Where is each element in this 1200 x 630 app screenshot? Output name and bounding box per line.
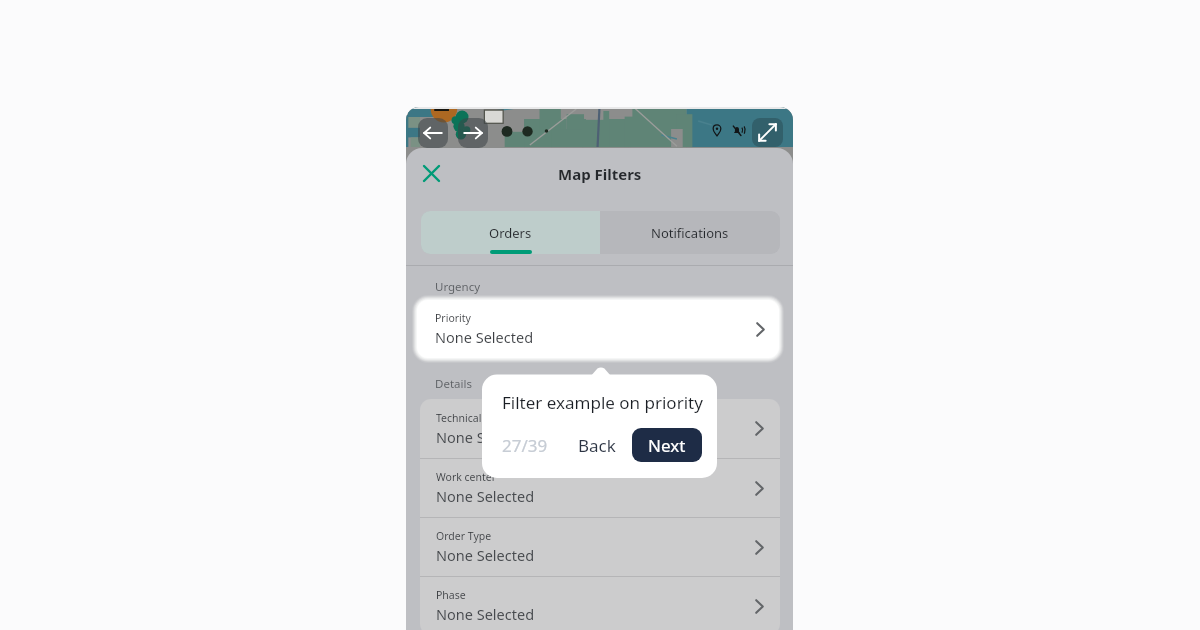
staticText: None Selected [435,327,534,347]
staticText: Next [648,434,686,457]
staticText: Back [578,434,616,457]
button[interactable]: Expand [752,118,783,147]
button[interactable]: Back [418,118,448,148]
staticText: Priority [435,311,471,325]
staticText: Map Filters [558,164,642,184]
staticText: Orders [489,224,532,242]
staticText: None Selected [436,604,535,624]
button[interactable]: Priority [417,300,779,358]
button[interactable]: Location [708,121,726,139]
staticText: 27/39 [502,434,548,457]
button[interactable]: Technical Object [420,399,780,458]
staticText: Order Type [436,529,492,543]
button[interactable]: Next [632,428,702,462]
staticText: Work center [436,470,497,484]
button[interactable]: Close [417,159,445,187]
staticText: Details [435,376,472,392]
button[interactable]: Notifications [600,211,780,254]
button[interactable]: Order Type [420,518,780,576]
button[interactable]: Mute alerts [730,121,748,139]
button[interactable]: Work center [420,459,780,517]
staticText: None Selected [436,545,535,565]
staticText: Urgency [435,279,481,295]
staticText: Technical Object [436,411,517,425]
staticText: None Selected [436,427,535,447]
staticText: Notifications [651,224,729,242]
button[interactable]: Phase [420,577,780,630]
button[interactable]: Back [574,430,620,461]
button[interactable]: Orders [421,211,600,254]
staticText: Phase [436,588,466,602]
staticText: Filter example on priority [502,391,703,414]
staticText: None Selected [436,486,535,506]
button[interactable]: Forward [458,118,488,148]
